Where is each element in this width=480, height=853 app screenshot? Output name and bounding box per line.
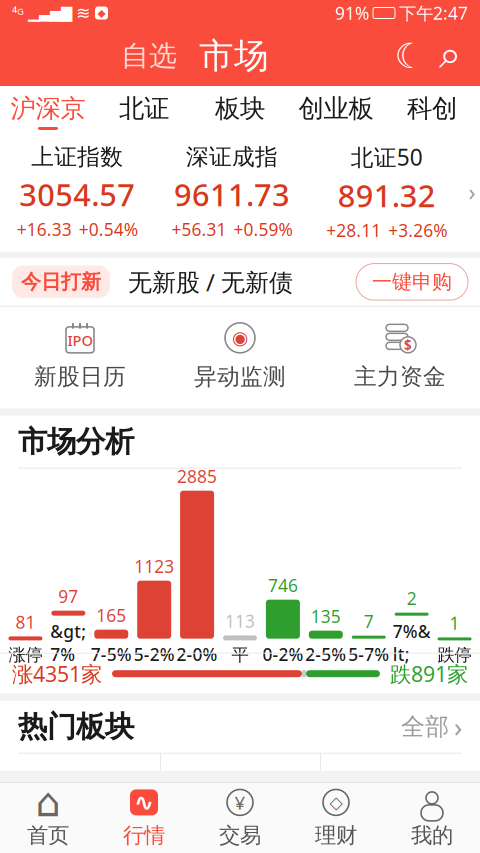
staticText: 7%&lt; [393, 620, 431, 666]
staticText: $ [404, 336, 412, 354]
staticText: +0.59% [233, 218, 292, 241]
staticText: › [454, 709, 462, 744]
staticText: +56.31 [171, 218, 226, 241]
button[interactable]: 深证成指 [155, 143, 309, 241]
staticText: 97 [58, 585, 78, 608]
staticText: ¥ [234, 790, 245, 815]
staticText: 板块 [215, 93, 265, 124]
staticText: › [468, 177, 475, 207]
staticText: 北证 [119, 93, 169, 124]
staticText: ⌂ [35, 780, 60, 825]
staticText: IPO [67, 331, 92, 350]
button[interactable]: 夜间模式 [390, 36, 430, 76]
staticText: 深证成指 [186, 143, 278, 171]
staticText: 理财 [315, 822, 357, 849]
staticText: ◇ [329, 793, 342, 812]
button[interactable]: 全部 [401, 709, 462, 744]
staticText: 2885 [177, 465, 217, 488]
staticText: 沪深京 [10, 93, 85, 124]
staticText: +28.11 [326, 219, 381, 242]
staticText: 1123 [134, 555, 174, 578]
staticText: ◆ [97, 7, 105, 19]
staticText: ▁▃▅▇ [28, 5, 72, 21]
staticText: 2-5% [305, 643, 346, 666]
staticText: 我的 [411, 822, 453, 849]
staticText: 135 [311, 605, 341, 628]
button[interactable]: ∿ [96, 787, 192, 849]
staticText: 无新股 / 无新债 [128, 266, 293, 298]
staticText: 7-5% [91, 643, 132, 666]
staticText: 跌891家 [390, 659, 468, 688]
staticText: +16.33 [17, 218, 72, 241]
staticText: 自选 [121, 39, 177, 73]
button[interactable]: 一键申购 [356, 264, 468, 300]
staticText: 全部 [401, 712, 449, 741]
button[interactable]: ¥ [192, 787, 288, 849]
staticText: 2 [407, 587, 417, 610]
staticText: 2-0% [177, 643, 218, 666]
staticText: 7 [364, 610, 374, 633]
staticText: 3054.57 [19, 174, 135, 215]
button[interactable]: 上证指数 [0, 143, 155, 241]
staticText: 新股日历 [34, 363, 126, 391]
button[interactable]: 我的 [384, 787, 480, 849]
staticText: +3.26% [388, 219, 447, 242]
staticText: 平 [231, 644, 248, 666]
staticText: ☾ [394, 36, 425, 76]
staticText: 异动监测 [194, 363, 286, 391]
staticText: 创业板 [298, 93, 373, 124]
staticText: 首页 [27, 822, 69, 849]
staticText: 上证指数 [31, 143, 123, 171]
staticText: +0.54% [79, 218, 138, 241]
staticText: 91% [335, 1, 369, 24]
staticText: ◉ [232, 327, 248, 348]
staticText: 涨停 [8, 644, 42, 666]
button[interactable]: $ [320, 321, 480, 391]
staticText: 今日打新 [21, 270, 101, 294]
staticText: 涨4351家 [12, 659, 102, 688]
button[interactable]: 北证50 [309, 142, 464, 242]
button[interactable]: 搜索 [430, 36, 470, 76]
staticText: &gt;7% [50, 620, 86, 666]
staticText: 81 [15, 610, 35, 633]
staticText: 跌停 [437, 644, 471, 666]
staticText: 下午2:47 [399, 1, 468, 24]
staticText: 热门板块 [18, 709, 134, 745]
staticText: 165 [96, 604, 126, 627]
staticText: 市场 [199, 35, 269, 77]
staticText: 1 [449, 611, 459, 634]
staticText: 行情 [123, 822, 165, 849]
staticText: 交易 [219, 822, 261, 849]
staticText: 746 [268, 574, 298, 597]
staticText: 113 [225, 609, 255, 632]
staticText: ⌕ [439, 36, 461, 75]
staticText: 科创 [407, 93, 457, 124]
staticText: 5-7% [348, 643, 389, 666]
button[interactable]: 创业板 [288, 86, 384, 136]
staticText: ⁴ᴳ [12, 3, 24, 23]
button[interactable]: 市场 [199, 35, 269, 77]
button[interactable]: 北证 [96, 86, 192, 136]
staticText: 一键申购 [372, 270, 452, 294]
button[interactable]: IPO [0, 321, 160, 391]
staticText: 主力资金 [354, 363, 446, 391]
staticText: ∿ [134, 789, 154, 816]
button[interactable]: ◇ [288, 787, 384, 849]
staticText: 北证50 [351, 142, 423, 172]
button[interactable]: 板块 [192, 86, 288, 136]
staticText: 5-2% [134, 643, 175, 666]
staticText: 9611.73 [174, 174, 290, 215]
staticText: 891.32 [338, 175, 436, 216]
staticText: 市场分析 [18, 424, 134, 460]
button[interactable]: 沪深京 [0, 86, 96, 136]
button[interactable]: 自选 [121, 39, 177, 73]
button[interactable]: ⌂ [0, 787, 96, 849]
button[interactable]: ◉ [160, 321, 320, 391]
staticText: ≋ [76, 3, 91, 23]
staticText: 0-2% [262, 643, 303, 666]
button[interactable]: 科创 [384, 86, 480, 136]
